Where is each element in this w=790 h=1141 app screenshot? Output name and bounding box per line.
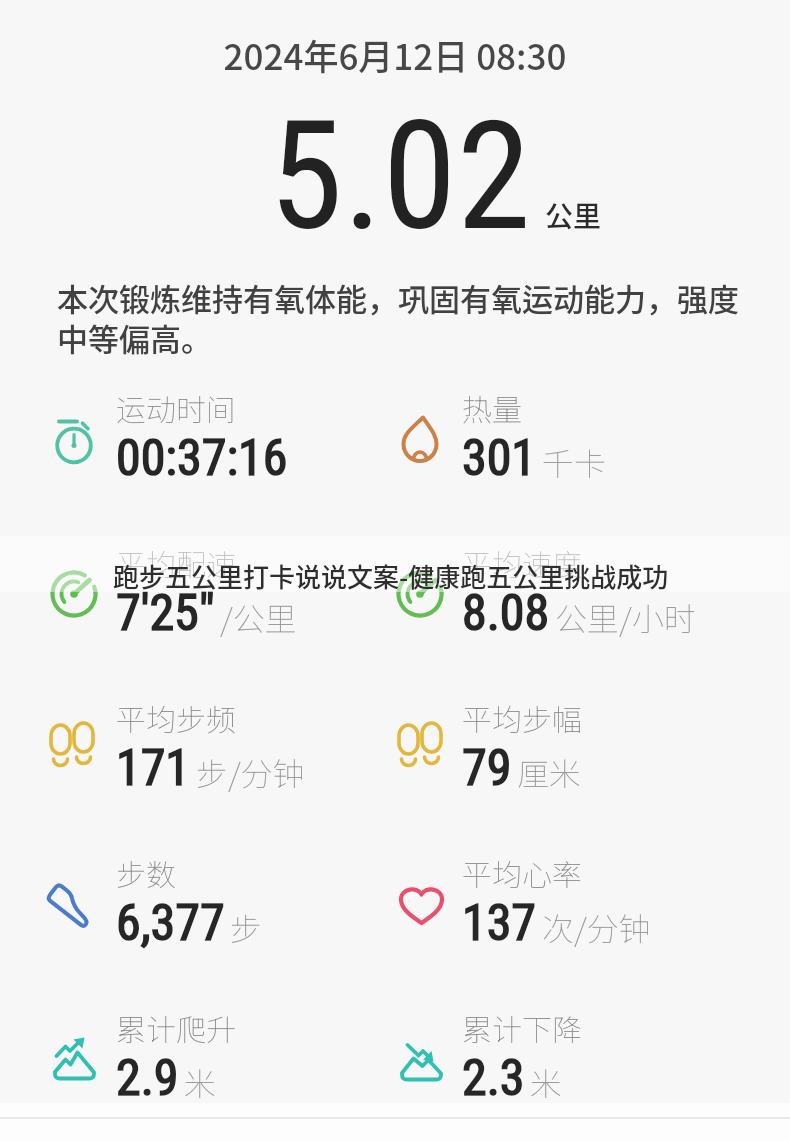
staticText: 137 [462,894,537,953]
staticText: 跑步五公里打卡说说文案-健康跑五公里挑战成功 [113,557,669,595]
button[interactable] [398,1001,728,1101]
staticText: 步数 [116,851,176,894]
button[interactable] [52,381,382,481]
staticText: 累计爬升 [116,1006,236,1049]
staticText: 平均配速 [116,541,236,584]
staticText: 累计下降 [462,1006,582,1049]
button[interactable] [52,1001,382,1101]
staticText: 00:37:16 [116,429,288,488]
staticText: 本次锻炼维持有氧体能，巩固有氧运动能力，强度中等偏高。 [57,275,749,360]
button[interactable] [398,846,728,946]
staticText: 平均速度 [462,541,582,584]
staticText: 千卡 [542,439,607,485]
staticText: 平均步频 [116,696,236,739]
staticText: 2.3 [462,1049,525,1108]
button[interactable] [398,381,728,481]
staticText: 步/分钟 [196,749,305,795]
staticText: 79 [462,739,512,798]
staticText: /公里 [220,594,297,640]
staticText: 2.9 [116,1049,179,1108]
button[interactable] [52,846,382,946]
staticText: 热量 [462,386,522,429]
staticText: 301 [462,429,537,488]
staticText: 7'25" [116,584,215,643]
staticText: 厘米 [517,749,582,795]
staticText: 平均步幅 [462,696,582,739]
staticText: 公里 [545,195,602,236]
staticText: 次/分钟 [542,904,651,950]
staticText: 运动时间 [116,386,236,429]
staticText: 5.02 [269,89,531,265]
button[interactable] [52,691,382,791]
staticText: 米 [184,1059,217,1105]
staticText: 2024年6月12日 08:30 [0,29,790,80]
staticText: 6,377 [116,894,225,953]
staticText: 步 [230,904,263,950]
staticText: 8.08 [462,584,550,643]
staticText: 平均心率 [462,851,582,894]
button[interactable] [52,536,382,636]
button[interactable] [398,536,728,636]
staticText: 171 [116,739,191,798]
button[interactable] [398,691,728,791]
staticText: 公里/小时 [555,594,696,640]
staticText: 米 [530,1059,563,1105]
